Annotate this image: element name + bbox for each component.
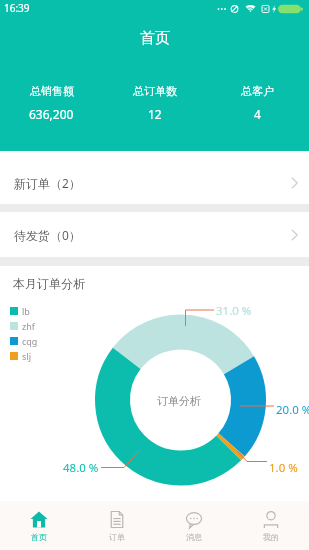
- staticText: 总销售额: [30, 84, 74, 98]
- staticText: 1.0 %: [269, 460, 298, 476]
- staticText: 636,200: [29, 106, 74, 122]
- staticText: 首页: [31, 532, 47, 542]
- button[interactable]: 首页: [0, 501, 78, 550]
- button[interactable]: 新订单（2）: [0, 151, 309, 204]
- staticText: 48.0 %: [63, 460, 99, 476]
- staticText: 新订单（2）: [14, 175, 81, 191]
- staticText: 我的: [263, 532, 279, 542]
- staticText: 16:39: [4, 1, 30, 15]
- staticText: 12: [148, 106, 162, 122]
- staticText: 总订单数: [133, 84, 177, 98]
- staticText: 消息: [186, 532, 202, 542]
- button[interactable]: 订单: [78, 501, 155, 550]
- staticText: 首页: [140, 29, 170, 48]
- button[interactable]: 待发货（0）: [0, 212, 309, 257]
- staticText: lb: [22, 305, 30, 317]
- staticText: 4: [254, 106, 261, 122]
- staticText: 待发货（0）: [14, 227, 81, 243]
- staticText: 订单: [109, 532, 125, 542]
- staticText: 20.0 %: [276, 402, 309, 418]
- button[interactable]: 我的: [232, 501, 309, 550]
- staticText: 总客户: [241, 84, 274, 98]
- staticText: slj: [22, 350, 31, 362]
- button[interactable]: 消息: [155, 501, 232, 550]
- staticText: 订单分析: [157, 394, 201, 408]
- staticText: cqg: [22, 335, 38, 347]
- staticText: 31.0 %: [216, 303, 252, 319]
- staticText: 本月订单分析: [13, 276, 85, 291]
- staticText: zhf: [22, 320, 35, 332]
